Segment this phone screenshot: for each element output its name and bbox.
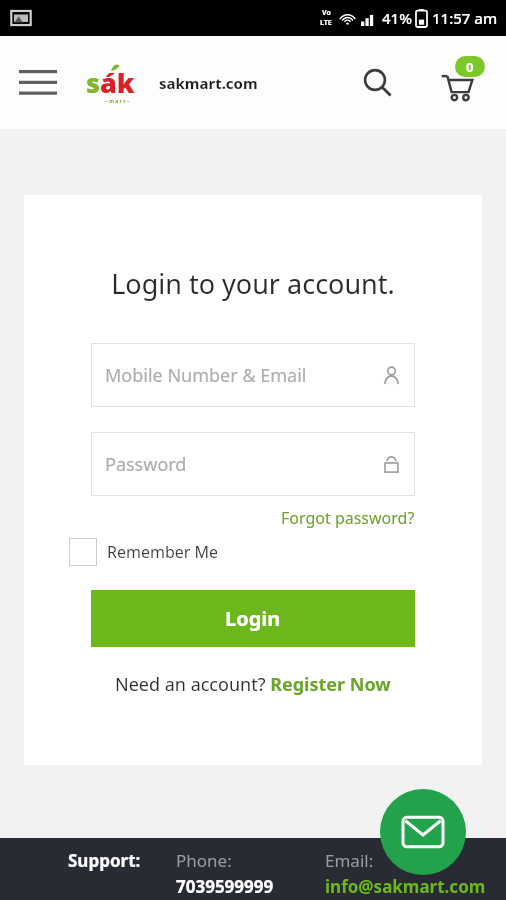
staticText: Password <box>105 452 187 477</box>
staticText: 0 <box>466 58 474 76</box>
button[interactable]: s <box>86 61 258 105</box>
staticText: Mobile Number & Email <box>105 363 307 388</box>
staticText: Login to your account. <box>111 265 395 302</box>
staticText: 7039599999 <box>176 875 274 898</box>
button[interactable]: Login <box>91 590 415 647</box>
staticText: LTE <box>320 18 332 28</box>
staticText: Phone: <box>176 849 232 872</box>
staticText: s <box>86 64 100 101</box>
staticText: Remember Me <box>107 541 219 563</box>
button[interactable]: Remember Me <box>69 538 482 566</box>
staticText: info@sakmart.com <box>325 875 486 898</box>
button[interactable]: Mobile Number & Email <box>91 343 415 407</box>
staticText: Support: <box>68 849 141 872</box>
button[interactable]: Need an account? Register Now <box>115 672 391 697</box>
staticText: Need an account? Register Now <box>115 672 391 697</box>
staticText: ák <box>100 64 135 101</box>
button[interactable]: Forgot password? <box>281 507 415 529</box>
staticText: 11:57 am <box>432 8 498 28</box>
button[interactable]: Open navigation menu <box>12 57 64 109</box>
staticText: Email: <box>325 849 374 872</box>
staticText: sakmart.com <box>159 73 258 93</box>
button[interactable]: Password <box>91 432 415 496</box>
staticText: Vo <box>322 8 331 18</box>
staticText: 41% <box>382 8 412 28</box>
button[interactable]: Cart, 0 items <box>428 54 486 112</box>
staticText: Login <box>225 605 281 632</box>
button[interactable]: Contact us by email <box>380 789 466 875</box>
button[interactable]: Search <box>353 58 403 108</box>
staticText: ~ m a r t ~ <box>105 98 130 105</box>
